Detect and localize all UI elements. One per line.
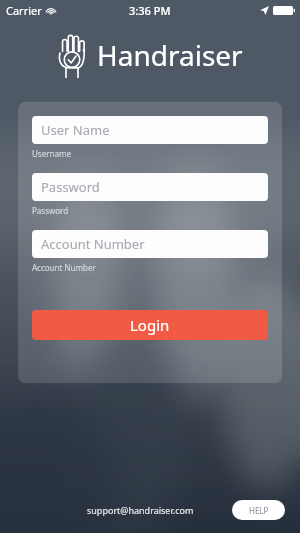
staticText: Login bbox=[130, 315, 170, 335]
other: Handraiser logo bbox=[57, 32, 87, 78]
staticText: HELP bbox=[249, 505, 269, 516]
staticText: Handraiser bbox=[97, 36, 243, 74]
button[interactable]: Account Number bbox=[32, 230, 268, 273]
staticText: support@handraiser.com bbox=[87, 504, 194, 516]
staticText: Password bbox=[32, 205, 69, 216]
button[interactable]: Login bbox=[32, 310, 268, 340]
staticText: Account Number bbox=[41, 235, 145, 253]
button[interactable]: Password bbox=[32, 173, 268, 216]
button[interactable]: HELP bbox=[232, 500, 285, 520]
staticText: Username bbox=[32, 148, 71, 159]
staticText: 3:36 PM bbox=[129, 3, 171, 18]
staticText: Account Number bbox=[32, 262, 96, 273]
staticText: Password bbox=[41, 178, 100, 196]
staticText: User Name bbox=[41, 121, 110, 139]
staticText: Carrier bbox=[6, 3, 42, 18]
button[interactable]: User Name bbox=[32, 116, 268, 159]
